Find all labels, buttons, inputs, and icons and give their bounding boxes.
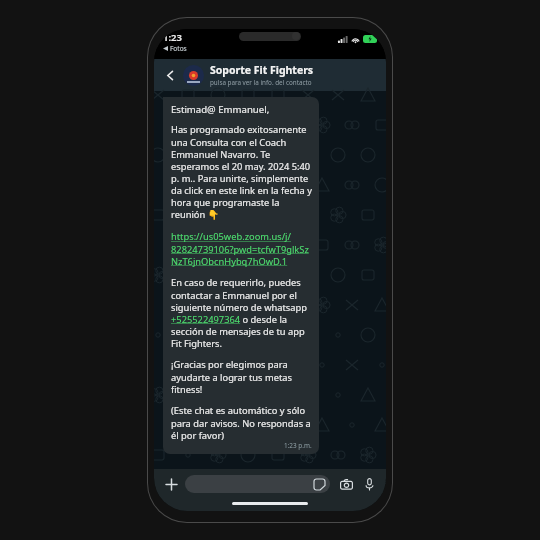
staticText: Has programado exitosamente una Consulta…: [171, 123, 312, 221]
button[interactable]: [185, 475, 330, 493]
button[interactable]: https://us05web.zoom.us/j/82824739106?pw…: [171, 230, 312, 267]
button[interactable]: Soporte Fit Fighters: [183, 59, 380, 91]
button[interactable]: Back: [160, 65, 180, 85]
staticText: En caso de requerirlo, puedes contactar …: [171, 276, 312, 349]
staticText: ¡Gracias por elegimos para ayudarte a lo…: [171, 358, 312, 395]
button[interactable]: Camera: [336, 474, 356, 494]
staticText: 1:23: [163, 31, 182, 44]
staticText: Estimad@ Emmanuel,: [171, 103, 270, 116]
staticText: (Este chat es automático y sólo para dar…: [171, 404, 312, 441]
staticText: pulsa para ver la info. del contacto: [210, 78, 312, 87]
staticText: 1:23 p.m.: [284, 441, 312, 450]
staticText: Soporte Fit Fighters: [210, 63, 314, 77]
button[interactable]: Voice message: [359, 474, 379, 494]
button[interactable]: Estimad@ Emmanuel,: [163, 97, 319, 454]
button[interactable]: Attach: [161, 474, 181, 494]
staticText: Fotos: [170, 44, 187, 53]
